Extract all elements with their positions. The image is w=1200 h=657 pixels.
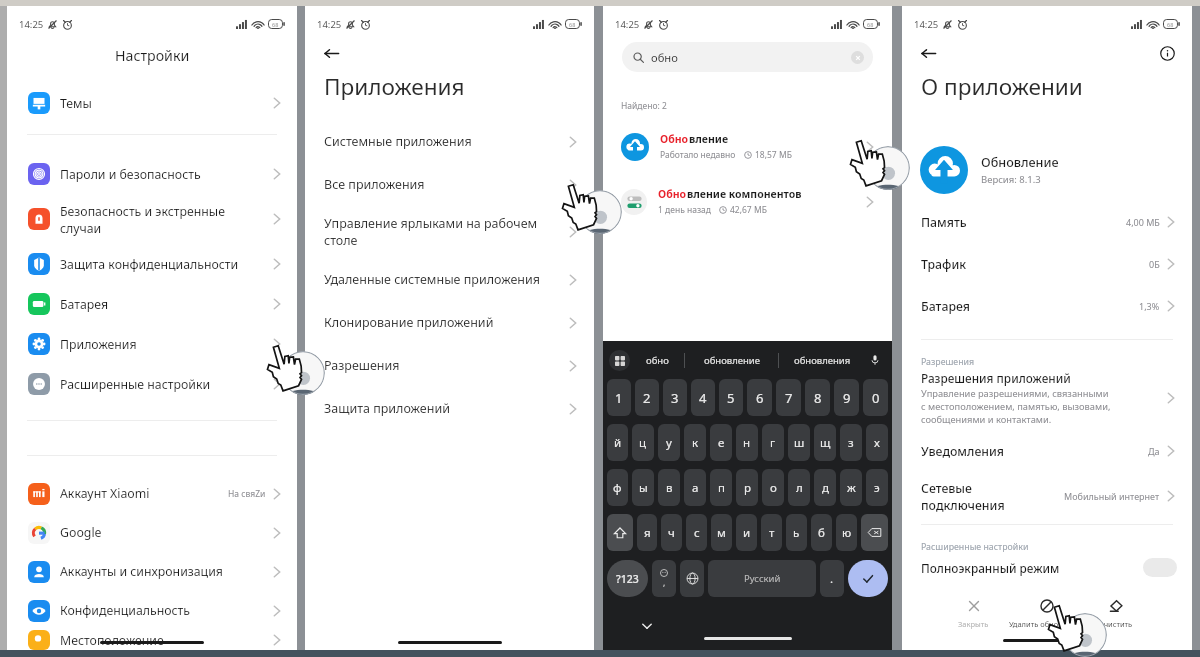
staticText: Расширенные настройки [921,541,1029,553]
button[interactable]: Трафик [902,243,1192,285]
button[interactable]: 3 [663,379,687,416]
button[interactable]: в [658,469,680,506]
button[interactable]: р [736,469,758,506]
button[interactable]: п [710,469,732,506]
button[interactable]: Info [1154,42,1180,65]
button[interactable]: г [762,424,784,461]
button[interactable]: м [711,514,732,551]
button[interactable]: а [684,469,706,506]
button[interactable]: с [686,514,707,551]
button[interactable]: т [761,514,782,551]
button[interactable]: обно [630,354,684,367]
button[interactable]: Удалить обновления [1005,599,1089,629]
staticText: ч [668,525,675,541]
staticText: 18,57 МБ [755,149,792,161]
button[interactable]: Hide keyboard [637,616,657,636]
button[interactable]: Очистить [1094,599,1137,629]
button[interactable]: ы [632,469,654,506]
button[interactable]: Shift [607,514,633,551]
button[interactable]: Местоположение [7,630,297,650]
button[interactable]: я [637,514,657,551]
button[interactable]: Change language [680,560,704,597]
button[interactable]: к [684,424,706,461]
button[interactable]: Защита приложений [305,387,594,430]
button[interactable]: Управление ярлыками на рабочем столе [305,206,594,258]
button[interactable]: й [607,424,628,461]
button[interactable]: 4 [691,379,715,416]
button[interactable]: Аккаунт Xiaomi [7,474,297,513]
button[interactable]: э [866,469,888,506]
button[interactable]: Enter [848,560,888,597]
button[interactable]: Системные приложения [305,120,594,163]
button[interactable]: е [710,424,732,461]
button[interactable]: Приложения [7,324,297,364]
button[interactable]: обновление [685,354,778,367]
button[interactable]: Emoji [652,560,676,597]
button[interactable]: Расширенные настройки [7,364,297,404]
staticText: 42,67 МБ [730,204,767,216]
button[interactable]: Защита конфиденциальности [7,244,297,284]
staticText: щ [820,435,831,451]
button[interactable]: Пароли и безопасность [7,154,297,194]
button[interactable]: Память [902,201,1192,243]
button[interactable]: Voice input [866,351,884,369]
button[interactable]: Закрыть [954,599,993,629]
button[interactable]: ?123 [607,560,648,597]
button[interactable]: Back [316,42,346,65]
staticText: Расширенные настройки [60,376,271,393]
button[interactable]: 1 [607,379,631,416]
button[interactable]: Back [913,42,943,65]
button[interactable]: 2 [635,379,659,416]
button[interactable]: 6 [747,379,772,416]
button[interactable]: Аккаунты и синхронизация [7,552,297,591]
button[interactable]: ч [661,514,682,551]
button[interactable]: Удаленные системные приложения [305,258,594,301]
button[interactable]: Сетевые подключения [902,472,1192,520]
button[interactable]: х [866,424,888,461]
button[interactable]: 5 [719,379,743,416]
button[interactable]: Полноэкранный режим [902,558,1192,577]
button[interactable]: н [736,424,758,461]
button[interactable]: з [840,424,862,461]
staticText: к [692,435,699,451]
button[interactable]: Обно [603,174,892,229]
button[interactable]: Keyboard menu [609,350,630,371]
button[interactable]: Русский [708,560,816,597]
button[interactable]: Батарея [902,285,1192,327]
button[interactable]: Разрешения приложений [902,370,1192,426]
button[interactable]: Google [7,513,297,552]
button[interactable]: ш [788,424,810,461]
button[interactable]: Разрешения [305,344,594,387]
button[interactable]: 9 [834,379,859,416]
button[interactable]: ж [840,469,862,506]
button[interactable]: и [736,514,757,551]
button[interactable]: 7 [776,379,801,416]
button[interactable]: ю [836,514,857,551]
button[interactable]: Уведомления [902,430,1192,472]
button[interactable]: о [762,469,784,506]
button[interactable]: Backspace [861,514,888,551]
button[interactable]: обно [622,42,873,72]
button[interactable]: обновления [779,354,866,367]
button[interactable]: 0 [863,379,888,416]
staticText: Управление разрешениями, связанными с ме… [921,387,1111,426]
button[interactable]: Батарея [7,284,297,324]
button[interactable]: Все приложения [305,163,594,206]
button[interactable]: щ [814,424,836,461]
button[interactable]: б [811,514,832,551]
button[interactable]: д [814,469,836,506]
button[interactable]: Клонирование приложений [305,301,594,344]
button[interactable]: у [658,424,680,461]
button[interactable]: ц [632,424,654,461]
button[interactable]: Обно [603,119,892,174]
button[interactable]: Темы [7,83,297,123]
button[interactable]: ф [607,469,628,506]
button[interactable]: . [820,560,844,597]
staticText: 9 [843,389,851,407]
button[interactable]: ь [786,514,807,551]
button[interactable]: Конфиденциальность [7,591,297,630]
button[interactable]: л [788,469,810,506]
button[interactable]: Безопасность и экстренные случаи [7,194,297,244]
button[interactable]: 8 [805,379,830,416]
staticText: Версия: 8.1.3 [981,173,1041,186]
